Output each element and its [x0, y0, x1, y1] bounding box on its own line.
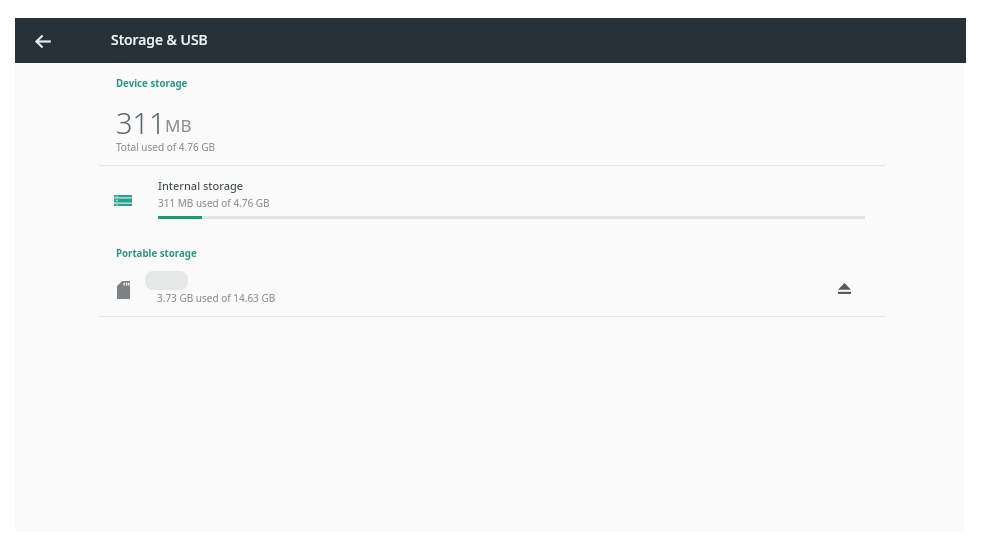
button[interactable]: Internal storage — [15, 170, 964, 232]
staticText: 3.73 GB used of 14.63 GB — [157, 291, 276, 305]
staticText: Storage & USB — [111, 30, 208, 49]
staticText: Total used of 4.76 GB — [116, 140, 215, 154]
staticText: 311 — [116, 103, 166, 142]
staticText: 311 MB used of 4.76 GB — [158, 196, 270, 210]
staticText: Portable storage — [116, 247, 197, 260]
staticText: MB — [165, 114, 192, 137]
button[interactable]: 3.73 GB used of 14.63 GB — [15, 266, 964, 314]
staticText: Device storage — [116, 77, 188, 90]
button[interactable]: Navigate up — [22, 20, 64, 62]
button[interactable]: Eject — [822, 266, 866, 310]
staticText: Internal storage — [158, 178, 244, 193]
